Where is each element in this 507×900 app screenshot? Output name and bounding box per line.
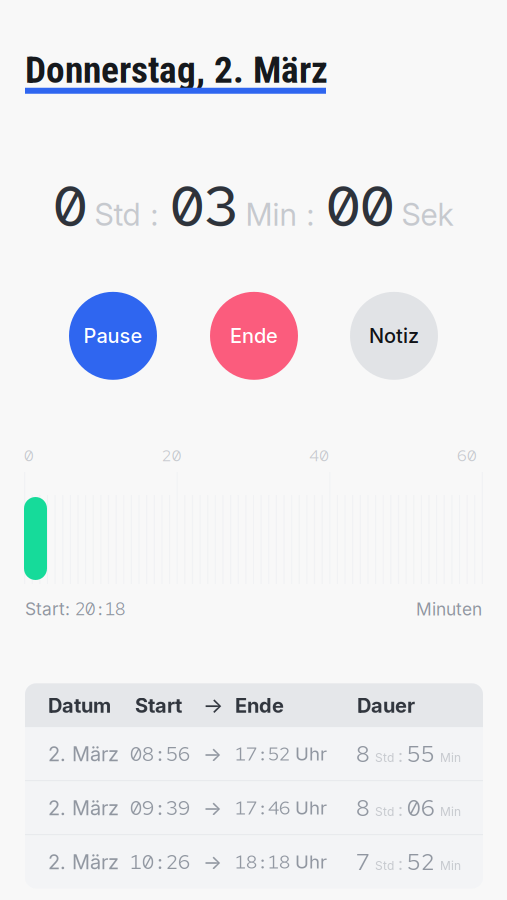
staticText: 18:18 Uhr — [235, 850, 327, 874]
staticText: → — [203, 692, 223, 718]
staticText: Datum — [48, 693, 111, 717]
staticText: Start — [135, 693, 182, 717]
staticText: → — [203, 742, 222, 766]
staticText: Std — [94, 196, 140, 233]
staticText: 2. März — [48, 742, 119, 766]
staticText: Minuten — [416, 599, 482, 620]
staticText: Min — [245, 196, 296, 233]
staticText: Notiz — [369, 324, 419, 348]
staticText: 17:46 Uhr — [235, 796, 327, 820]
staticText: Ende — [230, 324, 278, 348]
staticText: 2. März — [48, 796, 119, 820]
button[interactable]: Pause — [69, 292, 157, 380]
staticText: : — [398, 799, 403, 820]
staticText: 08:56 — [130, 741, 190, 767]
staticText: 40 — [309, 445, 329, 466]
staticText: Ende — [235, 693, 284, 717]
staticText: Std — [375, 858, 394, 873]
staticText: Sek — [401, 196, 453, 233]
staticText: Min — [440, 750, 461, 765]
staticText: : — [150, 196, 158, 233]
staticText: : — [398, 745, 403, 766]
button[interactable]: Ende — [210, 292, 298, 380]
staticText: 17:52 Uhr — [235, 742, 327, 766]
staticText: 8 — [356, 739, 370, 769]
staticText: 10:26 — [130, 849, 190, 875]
staticText: Start: 20:18 — [25, 598, 125, 620]
staticText: Min — [440, 858, 461, 873]
staticText: 06 — [407, 793, 435, 823]
staticText: → — [203, 850, 222, 874]
staticText: → — [203, 796, 222, 820]
staticText: Std — [375, 750, 394, 765]
staticText: : — [306, 196, 314, 233]
staticText: Dauer — [357, 693, 415, 717]
staticText: 03 — [170, 169, 238, 243]
staticText: Donnerstag, 2. März — [25, 48, 328, 92]
staticText: 0 — [24, 445, 34, 466]
staticText: 20 — [162, 445, 182, 466]
staticText: 0 — [53, 169, 87, 243]
staticText: : — [398, 853, 403, 874]
staticText: 00 — [326, 169, 394, 243]
staticText: 2. März — [48, 850, 119, 874]
staticText: 09:39 — [130, 795, 190, 821]
staticText: Min — [440, 804, 461, 819]
staticText: 8 — [356, 793, 370, 823]
staticText: 55 — [407, 739, 435, 769]
staticText: 52 — [407, 847, 435, 877]
staticText: 7 — [356, 847, 370, 877]
staticText: Pause — [83, 324, 142, 348]
staticText: Std — [375, 804, 394, 819]
button[interactable]: Notiz — [350, 292, 438, 380]
staticText: 60 — [457, 445, 477, 466]
